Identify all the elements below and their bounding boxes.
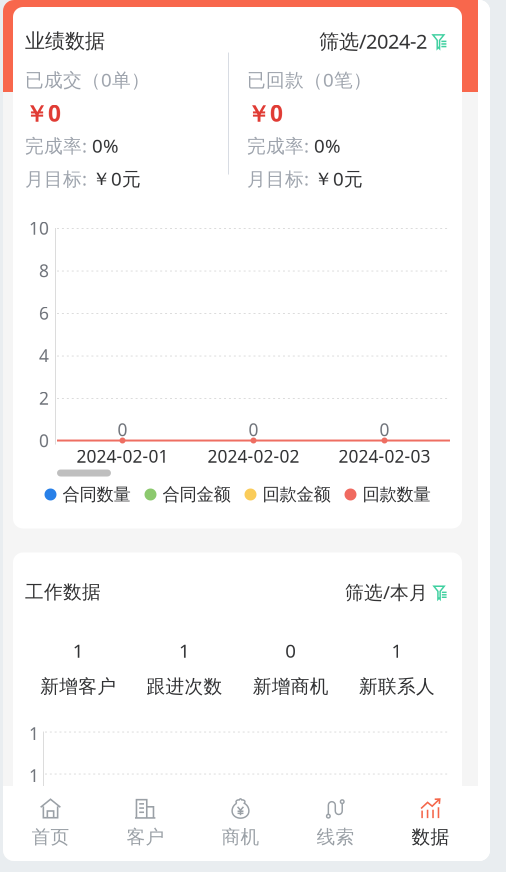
button[interactable]: 商机 bbox=[193, 798, 288, 846]
staticText: 0% bbox=[314, 133, 341, 158]
staticText: 月目标: bbox=[25, 166, 92, 191]
staticText: 2024-02-02 bbox=[207, 444, 299, 467]
staticText: 已成交（0单） bbox=[25, 67, 150, 92]
staticText: ￥0元 bbox=[92, 166, 141, 191]
staticText: 商机 bbox=[221, 825, 259, 848]
staticText: 2024-02-03 bbox=[338, 444, 430, 467]
staticText: 8 bbox=[39, 259, 49, 282]
staticText: 数据 bbox=[411, 825, 449, 848]
staticText: 筛选/本月 bbox=[345, 580, 428, 604]
button[interactable]: 首页 bbox=[3, 798, 98, 846]
staticText: 回款金额 bbox=[262, 484, 330, 505]
staticText: 客户 bbox=[126, 825, 164, 848]
staticText: 1 bbox=[73, 638, 84, 663]
staticText: 工作数据 bbox=[25, 580, 101, 603]
button[interactable]: 数据 bbox=[383, 798, 478, 846]
staticText: 2024-02-01 bbox=[76, 444, 168, 467]
staticText: 线索 bbox=[316, 825, 354, 848]
staticText: ￥0 bbox=[25, 98, 61, 128]
staticText: 跟进次数 bbox=[146, 675, 222, 698]
staticText: 4 bbox=[39, 344, 49, 367]
button[interactable]: 筛选/本月 bbox=[345, 581, 450, 602]
staticText: 6 bbox=[39, 301, 49, 324]
staticText: 回款数量 bbox=[362, 484, 430, 505]
staticText: 1 bbox=[391, 638, 402, 663]
staticText: 已回款（0笔） bbox=[247, 67, 372, 92]
staticText: 新增客户 bbox=[40, 675, 116, 698]
staticText: 1 bbox=[29, 764, 39, 787]
staticText: 筛选/2024-2 bbox=[319, 28, 427, 54]
staticText: 1 bbox=[179, 638, 190, 663]
staticText: 月目标: bbox=[247, 166, 314, 191]
staticText: ￥0元 bbox=[314, 166, 363, 191]
staticText: 2 bbox=[39, 386, 49, 409]
staticText: 1 bbox=[29, 722, 39, 745]
staticText: 合同金额 bbox=[162, 484, 230, 505]
staticText: 完成率: bbox=[25, 133, 92, 158]
button[interactable]: 筛选/2024-2 bbox=[319, 30, 450, 52]
staticText: ￥0 bbox=[247, 98, 283, 128]
button[interactable]: 客户 bbox=[98, 798, 193, 846]
staticText: 10 bbox=[29, 216, 49, 239]
button[interactable]: 线索 bbox=[288, 798, 383, 846]
staticText: 0 bbox=[39, 429, 49, 452]
staticText: 新联系人 bbox=[359, 675, 435, 698]
staticText: 0 bbox=[117, 418, 127, 441]
staticText: 首页 bbox=[31, 825, 69, 848]
staticText: 0 bbox=[285, 638, 296, 663]
staticText: 合同数量 bbox=[62, 484, 130, 505]
staticText: 0 bbox=[248, 418, 258, 441]
staticText: 新增商机 bbox=[253, 675, 329, 698]
staticText: 业绩数据 bbox=[25, 29, 105, 53]
staticText: 0% bbox=[92, 133, 119, 158]
staticText: 完成率: bbox=[247, 133, 314, 158]
staticText: 0 bbox=[379, 418, 389, 441]
